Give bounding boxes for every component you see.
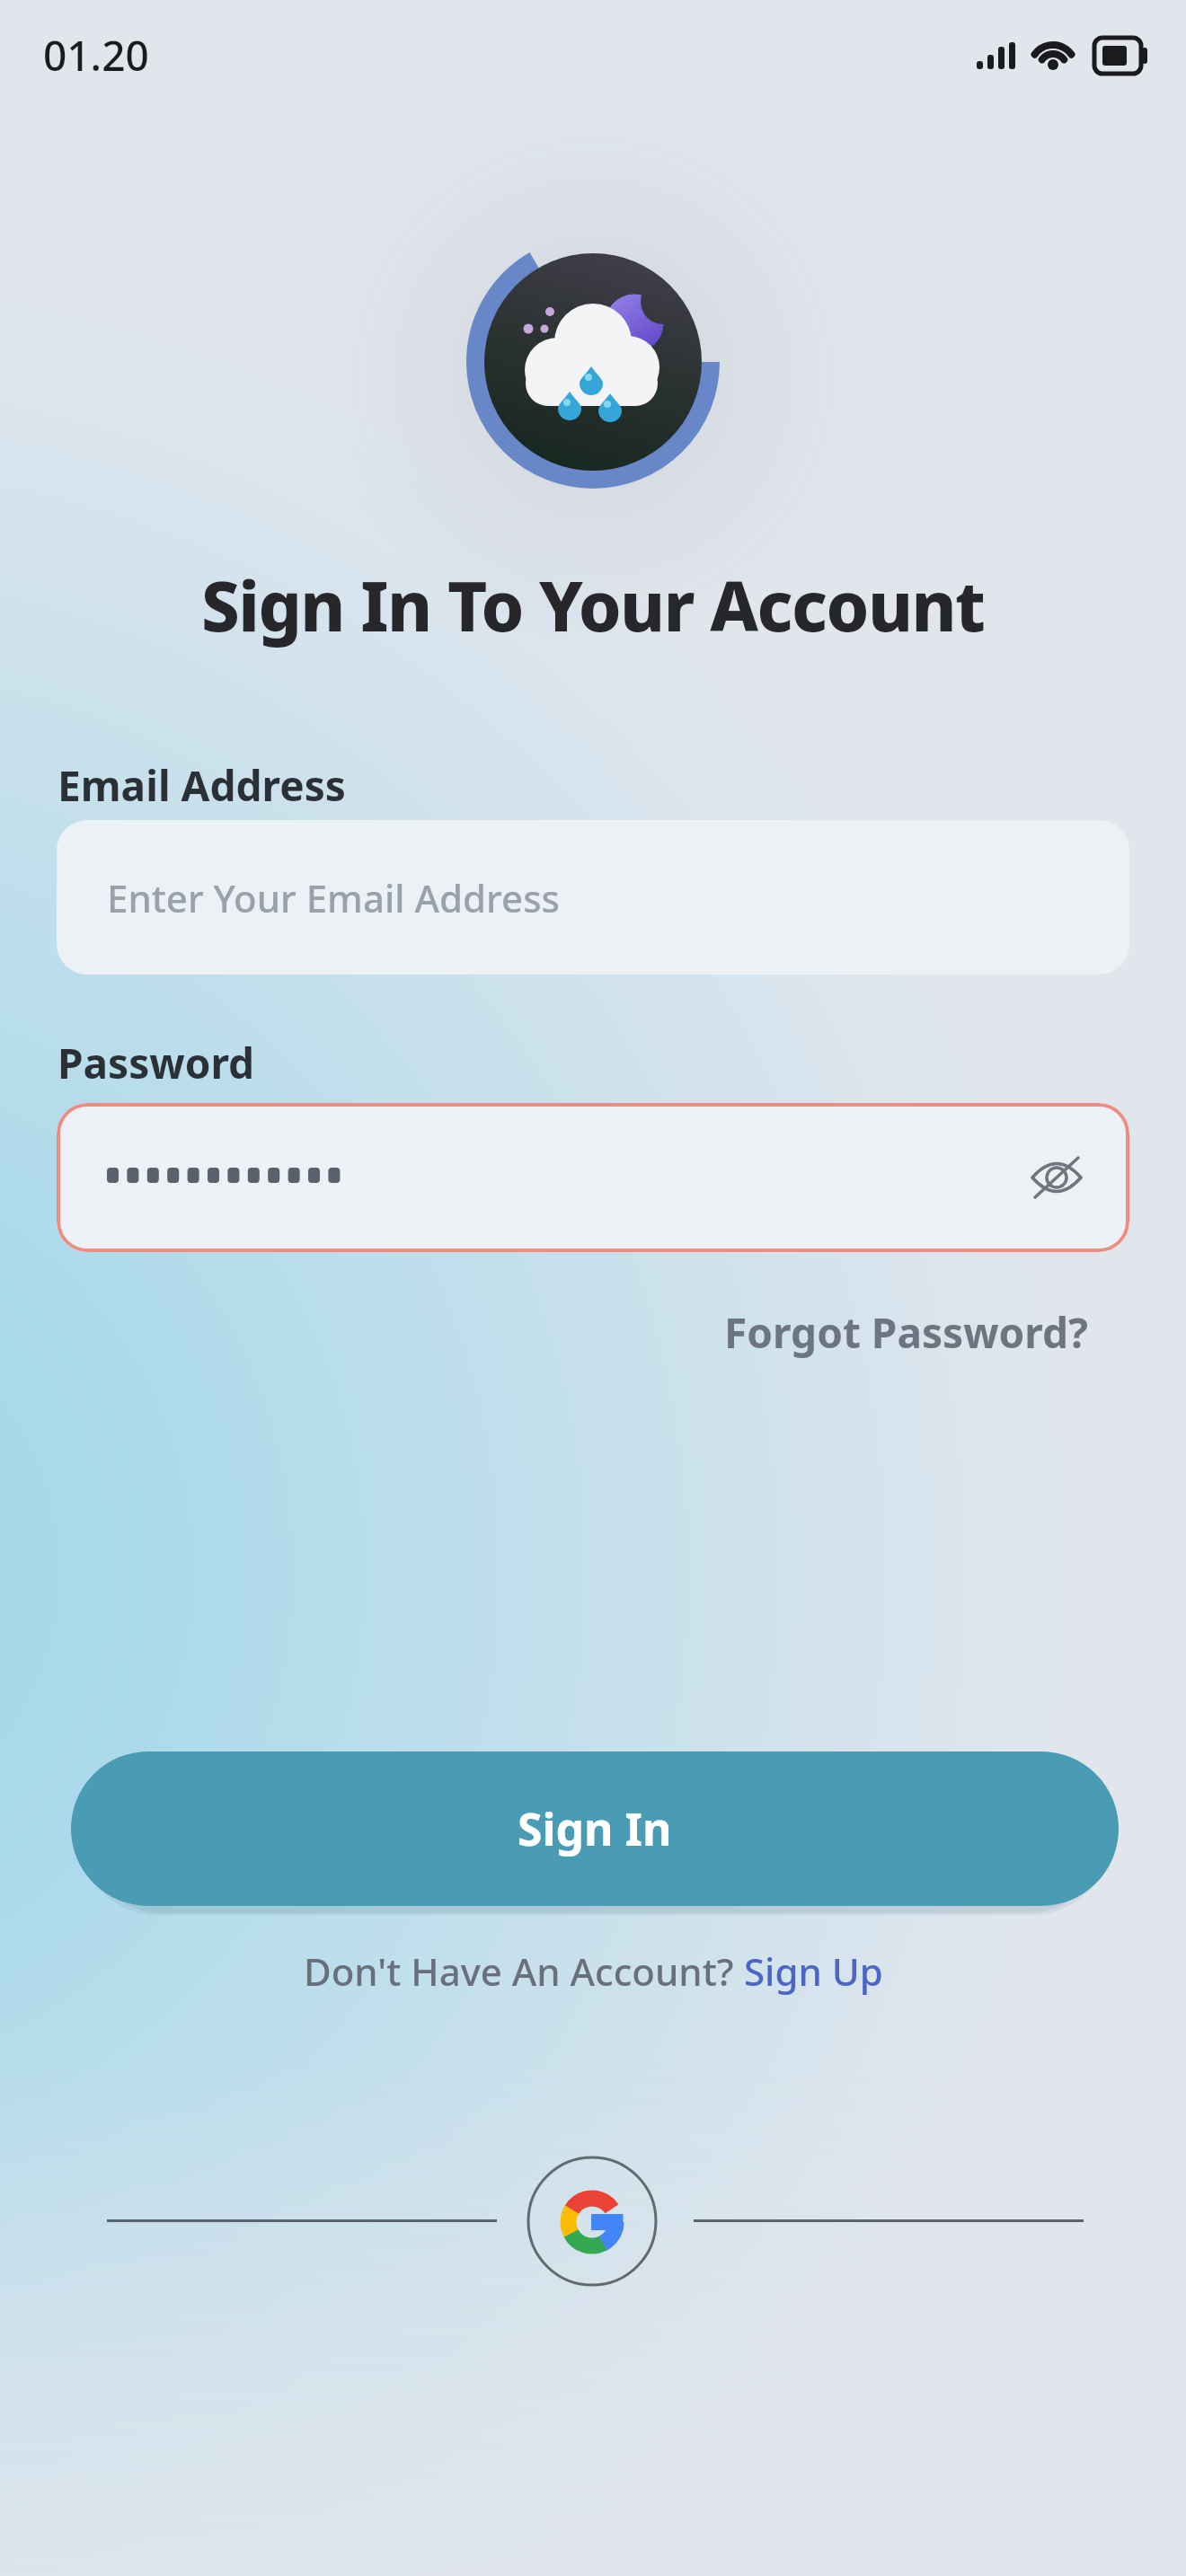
staticText: Sign Up [744,1945,883,1997]
staticText: Enter Your Email Address [107,872,560,923]
staticText: Email Address [58,757,346,814]
staticText: Sign In To Your Account [201,559,985,652]
button[interactable] [57,1103,1129,1252]
staticText: 01.20 [43,27,149,84]
button[interactable]: Don't Have An Account? [304,1945,883,1997]
staticText: Sign In [518,1798,672,1859]
button[interactable] [520,2149,664,2293]
staticText: Don't Have An Account? [304,1945,744,1997]
staticText: Password [58,1035,255,1091]
button[interactable]: Sign In [71,1751,1119,1906]
button[interactable]: Enter Your Email Address [57,820,1129,975]
button[interactable]: Forgot Password? [724,1304,1088,1361]
